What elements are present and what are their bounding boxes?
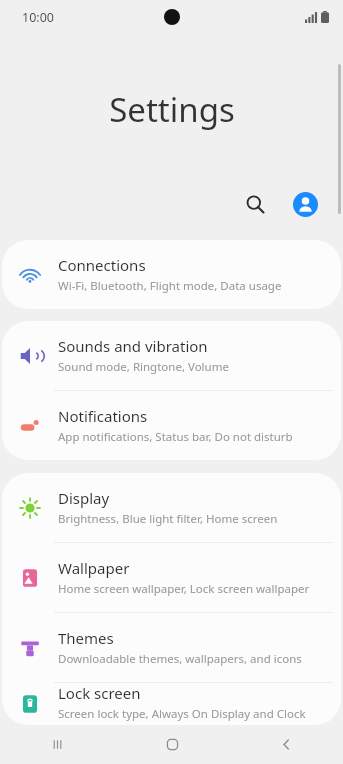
staticText: Display [58, 488, 110, 508]
staticText: Home screen wallpaper, Lock screen wallp… [58, 581, 310, 597]
button[interactable]: Themes [2, 613, 341, 683]
button[interactable]: Lock screen [2, 683, 341, 725]
staticText: App notifications, Status bar, Do not di… [58, 429, 293, 445]
staticText: Connections [58, 255, 146, 275]
button[interactable]: Search [235, 184, 275, 224]
button[interactable]: Notifications [2, 391, 341, 460]
staticText: Screen lock type, Always On Display and … [58, 706, 325, 725]
staticText: Downloadable themes, wallpapers, and ico… [58, 651, 302, 667]
staticText: Brightness, Blue light filter, Home scre… [58, 511, 278, 527]
button[interactable]: Display [2, 473, 341, 543]
staticText: Sounds and vibration [58, 336, 208, 356]
button[interactable]: Recents [0, 725, 115, 764]
staticText: Sound mode, Ringtone, Volume [58, 359, 229, 375]
button[interactable]: Home [115, 725, 229, 764]
button[interactable]: Sounds and vibration [2, 321, 341, 391]
staticText: Wallpaper [58, 558, 130, 578]
staticText: Themes [58, 628, 114, 648]
staticText: 10:00 [22, 9, 54, 26]
staticText: Settings [109, 87, 235, 132]
button[interactable]: Wallpaper [2, 543, 341, 613]
button[interactable]: Connections [2, 240, 341, 309]
staticText: Notifications [58, 406, 148, 426]
staticText: Wi-Fi, Bluetooth, Flight mode, Data usag… [58, 278, 282, 294]
staticText: Lock screen [58, 683, 141, 703]
button[interactable]: Account [285, 184, 325, 224]
button[interactable]: Back [229, 725, 343, 764]
